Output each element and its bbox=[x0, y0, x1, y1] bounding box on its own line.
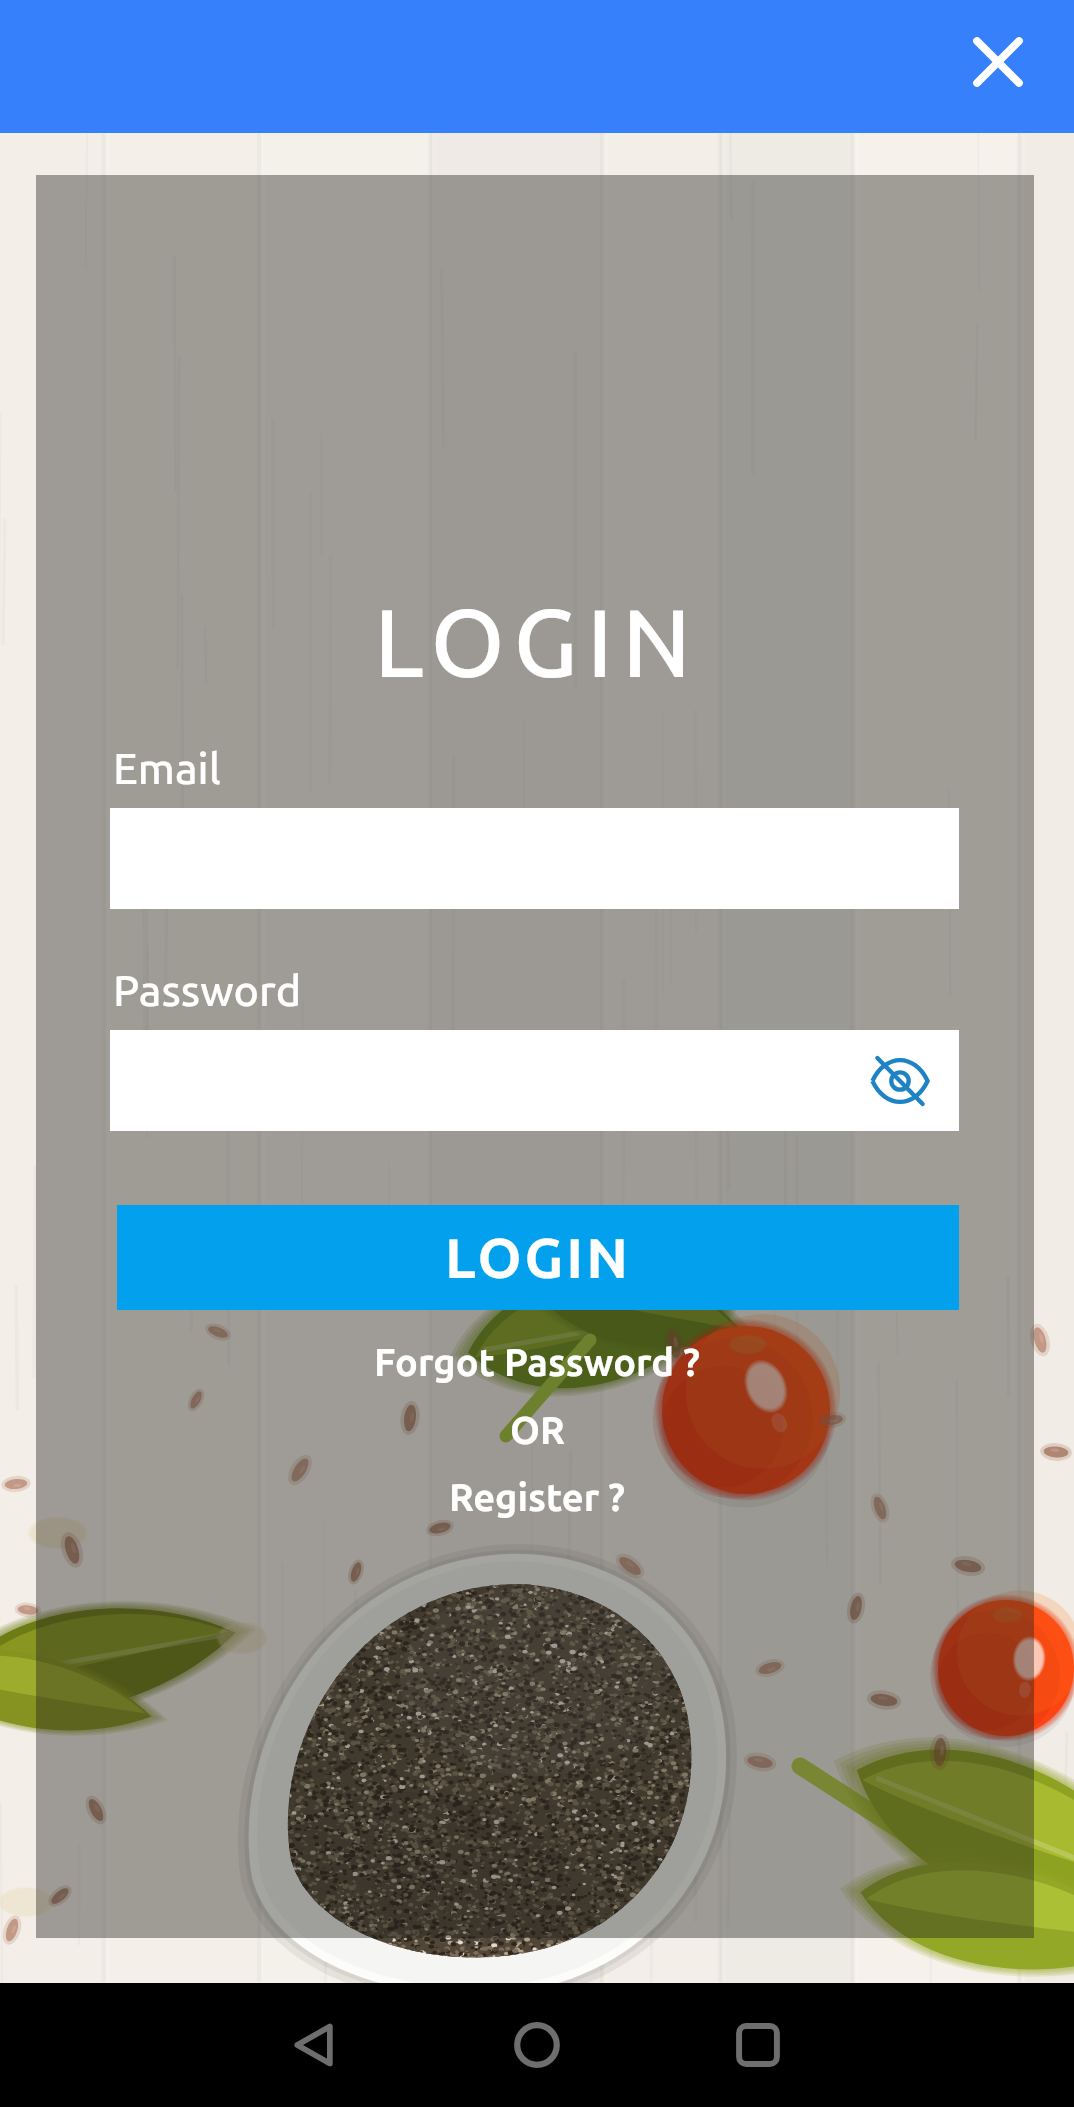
button[interactable]: Register ? bbox=[0, 1459, 1074, 1535]
staticText: LOGIN bbox=[374, 588, 701, 694]
staticText: Forgot Password ? bbox=[374, 1341, 700, 1384]
staticText: OR bbox=[510, 1409, 565, 1452]
button[interactable]: Show password bbox=[863, 1044, 937, 1118]
button[interactable]: Recent apps bbox=[715, 2002, 801, 2088]
staticText: Password bbox=[113, 966, 302, 1014]
button[interactable]: Show password bbox=[110, 1030, 959, 1131]
staticText: Register ? bbox=[449, 1476, 625, 1519]
staticText: LOGIN bbox=[445, 1226, 631, 1289]
staticText: Email bbox=[113, 744, 221, 792]
button[interactable]: LOGIN bbox=[117, 1205, 959, 1310]
button[interactable]: Forgot Password ? bbox=[0, 1324, 1074, 1400]
button[interactable]: Back bbox=[271, 2002, 357, 2088]
button[interactable]: Home bbox=[494, 2002, 580, 2088]
button[interactable]: Close bbox=[948, 12, 1048, 112]
